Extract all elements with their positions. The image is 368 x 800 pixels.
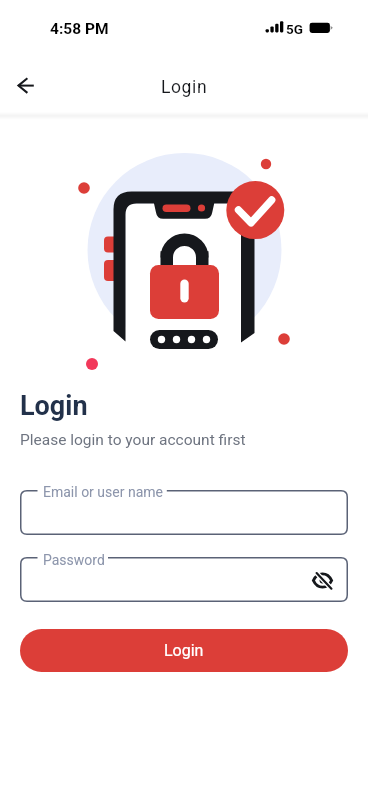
button[interactable] xyxy=(20,490,348,535)
staticText: Login xyxy=(20,390,88,422)
button[interactable]: Login xyxy=(20,629,348,672)
staticText: Password xyxy=(43,552,105,568)
staticText: 5G xyxy=(286,21,303,37)
button[interactable]: Show password xyxy=(309,567,335,593)
staticText: Login xyxy=(161,77,208,98)
staticText: 4:58 PM xyxy=(50,20,109,38)
staticText: Email or user name xyxy=(43,484,163,500)
staticText: Login xyxy=(164,641,204,660)
button[interactable]: Show password xyxy=(20,557,348,602)
button[interactable]: Back xyxy=(5,64,49,108)
staticText: Please login to your account first xyxy=(20,431,246,449)
